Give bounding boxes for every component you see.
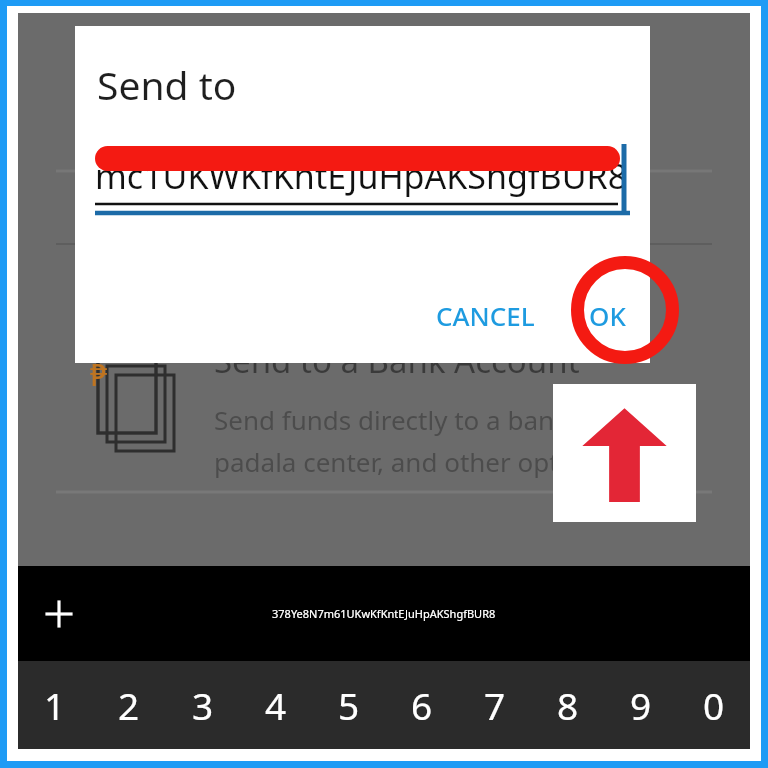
- staticText: 5: [338, 680, 360, 730]
- button[interactable]: 7: [458, 661, 531, 749]
- staticText: 6: [411, 680, 433, 730]
- button[interactable]: CANCEL: [420, 286, 551, 345]
- staticText: padala center, and other options.: [214, 444, 617, 479]
- button[interactable]: OK: [573, 286, 642, 345]
- button[interactable]: 5: [312, 661, 385, 749]
- staticText: OK: [589, 298, 626, 333]
- button[interactable]: Add: [42, 597, 76, 631]
- button[interactable]: 378Ye8N7m61UKwKfKntEJuHpAKShgfBUR8: [272, 606, 496, 621]
- button[interactable]: 0: [677, 661, 750, 749]
- staticText: ₱: [90, 354, 108, 395]
- staticText: 2: [118, 680, 140, 730]
- staticText: CANCEL: [436, 298, 535, 333]
- button[interactable]: 8: [531, 661, 604, 749]
- button[interactable]: 2: [92, 661, 166, 749]
- button[interactable]: mc1UKWKfKntEJuHpAKShgfBUR8: [95, 144, 630, 224]
- button[interactable]: 9: [604, 661, 677, 749]
- button[interactable]: 4: [239, 661, 312, 749]
- staticText: 8: [557, 680, 579, 730]
- staticText: 9: [630, 680, 652, 730]
- button[interactable]: 3: [166, 661, 239, 749]
- staticText: 378Ye8N7m61UKwKfKntEJuHpAKShgfBUR8: [272, 606, 496, 621]
- staticText: 3: [192, 680, 214, 730]
- staticText: Send funds directly to a bank account,: [214, 402, 679, 437]
- staticText: mc1UKWKfKntEJuHpAKShgfBUR8: [95, 153, 628, 199]
- staticText: 7: [484, 680, 506, 730]
- staticText: 1: [44, 680, 66, 730]
- staticText: Send to a Bank Account: [214, 338, 580, 383]
- staticText: Send to: [97, 58, 237, 111]
- staticText: 0: [703, 680, 725, 730]
- button[interactable]: 1: [18, 661, 92, 749]
- button[interactable]: 6: [385, 661, 458, 749]
- staticText: 4: [265, 680, 287, 730]
